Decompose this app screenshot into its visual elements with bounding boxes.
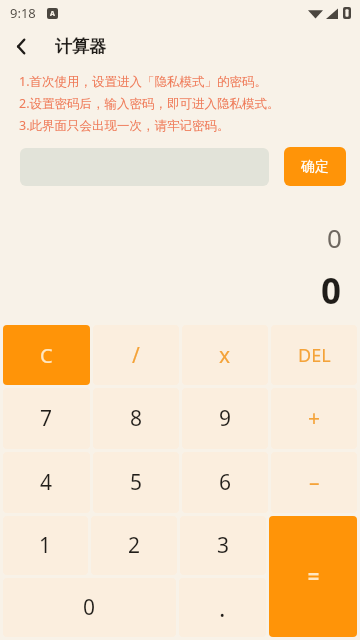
button[interactable]: C — [3, 325, 90, 385]
staticText: 5 — [130, 468, 143, 497]
staticText: 0 — [327, 220, 342, 255]
staticText: 6 — [219, 468, 232, 497]
staticText: 3 — [217, 531, 230, 560]
button[interactable]: Back — [0, 26, 42, 66]
button[interactable]: 7 — [3, 388, 90, 449]
button[interactable]: 0 — [3, 578, 176, 637]
button[interactable]: 3 — [180, 516, 266, 575]
button[interactable]: 2 — [91, 516, 177, 575]
button[interactable]: 5 — [93, 452, 179, 513]
button[interactable]: DEL — [271, 325, 357, 385]
staticText: 1 — [39, 531, 52, 560]
staticText: . — [219, 591, 226, 624]
staticText: 8 — [130, 404, 143, 433]
button[interactable]: 1 — [3, 516, 88, 575]
button[interactable]: 确定 — [284, 147, 346, 186]
button[interactable]: 9 — [182, 388, 268, 449]
staticText: 9 — [219, 404, 232, 433]
staticText: 2 — [128, 531, 141, 560]
button[interactable]: 4 — [3, 452, 90, 513]
button[interactable]: + — [271, 388, 357, 449]
button[interactable]: x — [182, 325, 268, 385]
staticText: 4 — [40, 468, 53, 497]
staticText: – — [309, 468, 320, 497]
button[interactable]: . — [179, 578, 266, 637]
staticText: 0 — [83, 593, 96, 622]
button[interactable]: 8 — [93, 388, 179, 449]
button[interactable]: 6 — [182, 452, 268, 513]
staticText: 9:18 — [10, 4, 36, 22]
staticText: / — [132, 341, 140, 370]
staticText: 2.设置密码后，输入密码，即可进入隐私模式。 — [19, 95, 280, 112]
button[interactable]: Equals — [269, 516, 357, 637]
staticText: 3.此界面只会出现一次，请牢记密码。 — [19, 117, 230, 134]
staticText: C — [40, 342, 53, 369]
staticText: 7 — [40, 404, 53, 433]
staticText: + — [308, 404, 321, 433]
button[interactable]: / — [93, 325, 179, 385]
staticText: 计算器 — [55, 36, 106, 57]
staticText: 0 — [321, 267, 342, 315]
staticText: 确定 — [301, 158, 329, 176]
staticText: 1.首次使用，设置进入「隐私模式」的密码。 — [19, 73, 268, 90]
staticText: A — [50, 9, 55, 19]
staticText: x — [219, 341, 231, 370]
button[interactable]: – — [271, 452, 357, 513]
staticText: DEL — [298, 343, 331, 368]
